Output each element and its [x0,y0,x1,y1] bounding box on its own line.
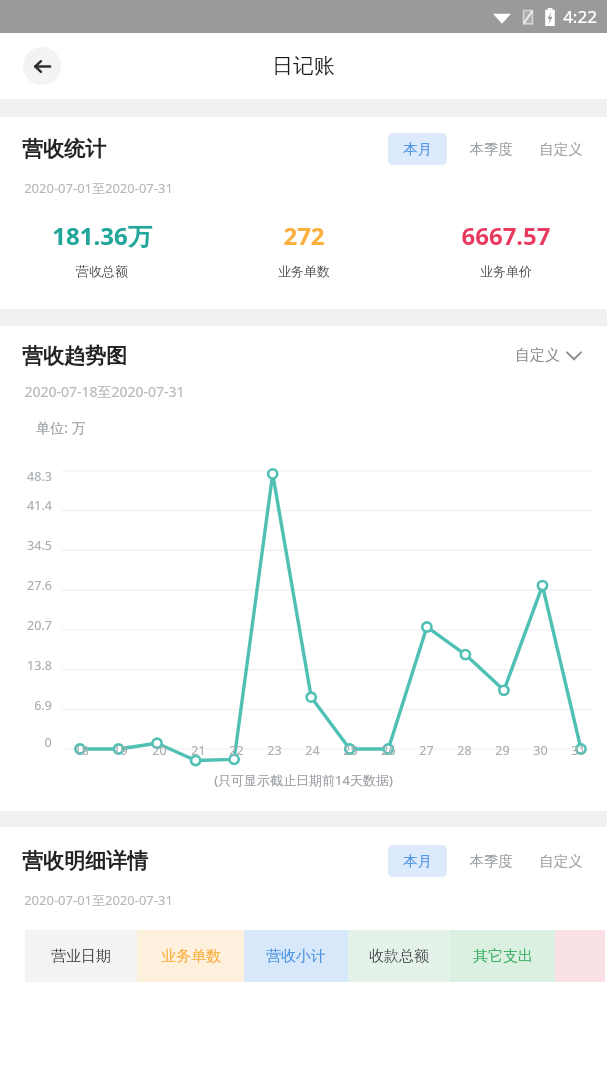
staticText: 181.36万 [52,219,152,252]
staticText: 营收小计 [266,947,326,966]
staticText: 营收统计 [22,136,106,162]
staticText: 自定义 [539,140,583,158]
staticText: 41.4 [27,497,52,514]
staticText: 业务单数 [278,263,330,279]
staticText: 营收明细详情 [22,848,148,874]
button[interactable]: 本季度 [447,133,517,165]
staticText: 25 [343,742,358,759]
staticText: 2020-07-01至2020-07-31 [24,179,173,197]
staticText: 19 [113,742,128,759]
button[interactable]: 营业日期 [25,930,137,982]
button[interactable]: 业务单数 [137,930,244,982]
button[interactable]: 自定义 [517,845,585,877]
staticText: 272 [283,219,325,252]
staticText: 营收趋势图 [22,343,127,369]
staticText: 业务单数 [161,947,221,966]
button[interactable]: 自定义 [511,342,585,369]
button[interactable]: 收款总额 [348,930,450,982]
staticText: 20.7 [27,617,52,634]
staticText: 0 [44,734,52,751]
staticText: 48.3 [27,468,52,485]
staticText: 2020-07-18至2020-07-31 [24,382,185,401]
button[interactable]: 营收小计 [244,930,348,982]
button[interactable]: 自定义 [517,133,585,165]
staticText: 23 [267,742,282,759]
button[interactable]: 本月 [388,845,447,877]
staticText: (只可显示截止日期前14天数据) [214,771,393,789]
staticText: 本季度 [469,140,513,158]
staticText: 31 [571,742,586,759]
staticText: 26 [381,742,396,759]
staticText: 营收总额 [76,263,128,279]
button[interactable]: 本月 [388,133,447,165]
staticText: 27 [419,742,434,759]
staticText: 2020-07-01至2020-07-31 [24,891,173,909]
staticText: 21 [191,742,206,759]
staticText: 27.6 [27,577,52,594]
staticText: 自定义 [539,852,583,870]
staticText: 34.5 [27,537,52,554]
staticText: 4:22 [563,5,597,28]
staticText: 营业日期 [51,947,111,966]
staticText: 18 [74,742,89,759]
staticText: 28 [457,742,472,759]
staticText: 30 [533,742,548,759]
staticText: 13.8 [27,657,52,674]
staticText: 本月 [403,852,432,870]
staticText: 29 [495,742,510,759]
button[interactable]: 其它支出 [450,930,555,982]
staticText: 22 [229,742,244,759]
button[interactable]: 本季度 [447,845,517,877]
staticText: 自定义 [515,346,560,365]
staticText: 日记账 [272,53,335,79]
staticText: 24 [305,742,320,759]
staticText: 本月 [403,140,432,158]
staticText: 业务单价 [480,263,532,279]
staticText: 20 [152,742,167,759]
staticText: 其它支出 [473,947,533,966]
staticText: 6667.57 [461,219,551,252]
button[interactable]: Back [23,47,61,85]
staticText: 收款总额 [369,947,429,966]
staticText: 单位: 万 [36,418,86,437]
staticText: 本季度 [469,852,513,870]
staticText: 6.9 [34,697,52,714]
